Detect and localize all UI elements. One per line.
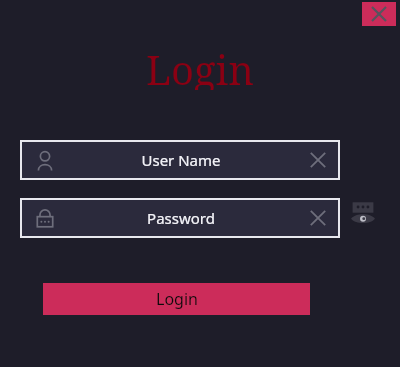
button[interactable]: Clear user name (306, 148, 330, 172)
staticText: Login (156, 288, 198, 310)
button[interactable]: Password (20, 198, 340, 238)
button[interactable]: Login (43, 283, 310, 315)
button[interactable]: Close (362, 2, 396, 26)
button[interactable]: User Name (20, 140, 340, 180)
staticText: Login (146, 42, 255, 90)
staticText: Password (147, 208, 215, 228)
button[interactable]: Show password (350, 201, 376, 227)
staticText: User Name (141, 150, 221, 170)
button[interactable]: Clear password (306, 206, 330, 230)
